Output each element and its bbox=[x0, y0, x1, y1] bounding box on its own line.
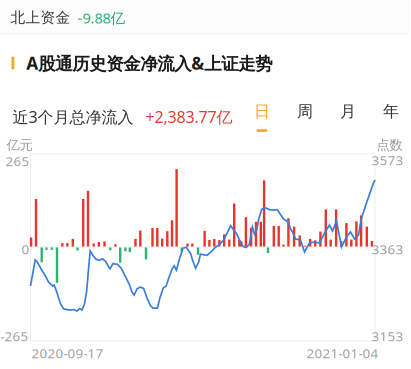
staticText: 3153 bbox=[371, 327, 403, 345]
staticText: 近3个月总净流入 bbox=[12, 106, 133, 127]
staticText: 2020-09-17 bbox=[31, 344, 103, 362]
staticText: 3363 bbox=[371, 240, 403, 258]
staticText: 周 bbox=[297, 102, 313, 121]
staticText: 日 bbox=[254, 102, 270, 121]
staticText: 月 bbox=[340, 102, 356, 121]
button[interactable]: 日 bbox=[240, 102, 283, 132]
button[interactable]: 月 bbox=[326, 102, 369, 132]
staticText: A股通历史资金净流入&上证走势 bbox=[26, 51, 272, 75]
staticText: 亿元 bbox=[6, 137, 32, 153]
staticText: +2,383.77亿 bbox=[145, 106, 232, 127]
button[interactable]: 周 bbox=[283, 102, 326, 132]
staticText: 3573 bbox=[371, 151, 403, 169]
staticText: 点数 bbox=[376, 137, 402, 153]
staticText: 年 bbox=[383, 102, 399, 121]
staticText: 北上资金 bbox=[10, 9, 70, 27]
staticText: 0 bbox=[21, 240, 29, 258]
staticText: 2021-01-04 bbox=[306, 344, 378, 362]
staticText: -265 bbox=[0, 327, 28, 345]
staticText: -9.88亿 bbox=[77, 8, 125, 27]
button[interactable]: 年 bbox=[369, 102, 411, 132]
staticText: 265 bbox=[5, 152, 29, 170]
